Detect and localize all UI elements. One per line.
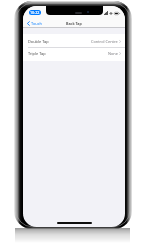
button[interactable]: Double Tap <box>23 34 125 48</box>
staticText: Back Tap <box>66 21 82 26</box>
staticText: Control Centre <box>91 39 118 44</box>
button[interactable]: Triple Tap <box>23 48 125 61</box>
button[interactable]: Touch <box>26 20 44 27</box>
staticText: Triple Tap <box>28 51 46 56</box>
staticText: None <box>108 51 118 56</box>
staticText: 10:22 <box>30 10 40 15</box>
staticText: Touch <box>31 21 43 26</box>
staticText: Double Tap <box>28 39 49 44</box>
